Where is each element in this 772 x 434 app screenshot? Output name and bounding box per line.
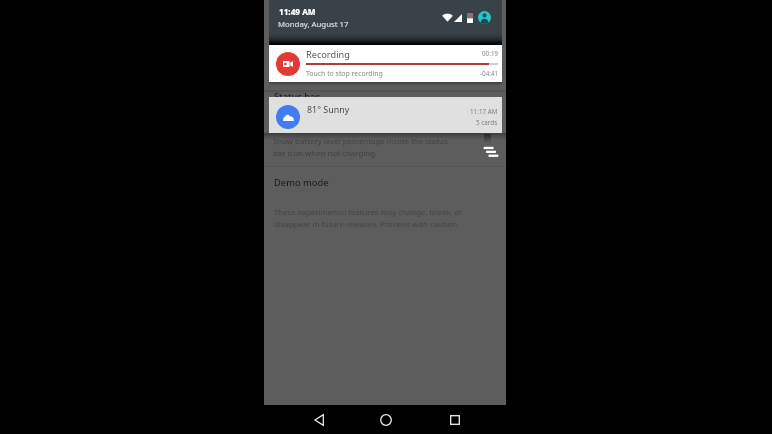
staticText: Touch to stop recording — [306, 69, 383, 78]
button[interactable]: Back — [307, 408, 330, 431]
staticText: 00:19 — [482, 49, 499, 58]
staticText: 81° Sunny — [307, 103, 350, 115]
staticText: bar icon when not charging — [273, 148, 376, 159]
staticText: -04:41 — [480, 69, 499, 78]
staticText: 5 cards — [476, 118, 498, 127]
button[interactable]: Home — [374, 408, 397, 431]
button[interactable]: User profile — [478, 11, 491, 24]
staticText: disappear in future releases. Proceed wi… — [274, 219, 460, 230]
button[interactable]: Recording — [269, 45, 502, 82]
button[interactable]: Recents — [443, 408, 466, 431]
staticText: Demo mode — [274, 176, 329, 189]
staticText: Monday, August 17 — [278, 19, 349, 30]
button[interactable]: 81° Sunny — [269, 97, 502, 133]
staticText: Recording — [306, 48, 350, 61]
staticText: 11:49 AM — [279, 6, 316, 17]
button[interactable]: Sort — [478, 144, 496, 162]
staticText: 11:17 AM — [470, 107, 498, 116]
staticText: Show battery level percentage inside the… — [273, 136, 448, 147]
staticText: These experimental features may change, … — [274, 207, 463, 218]
staticText: Status bar — [274, 90, 320, 103]
